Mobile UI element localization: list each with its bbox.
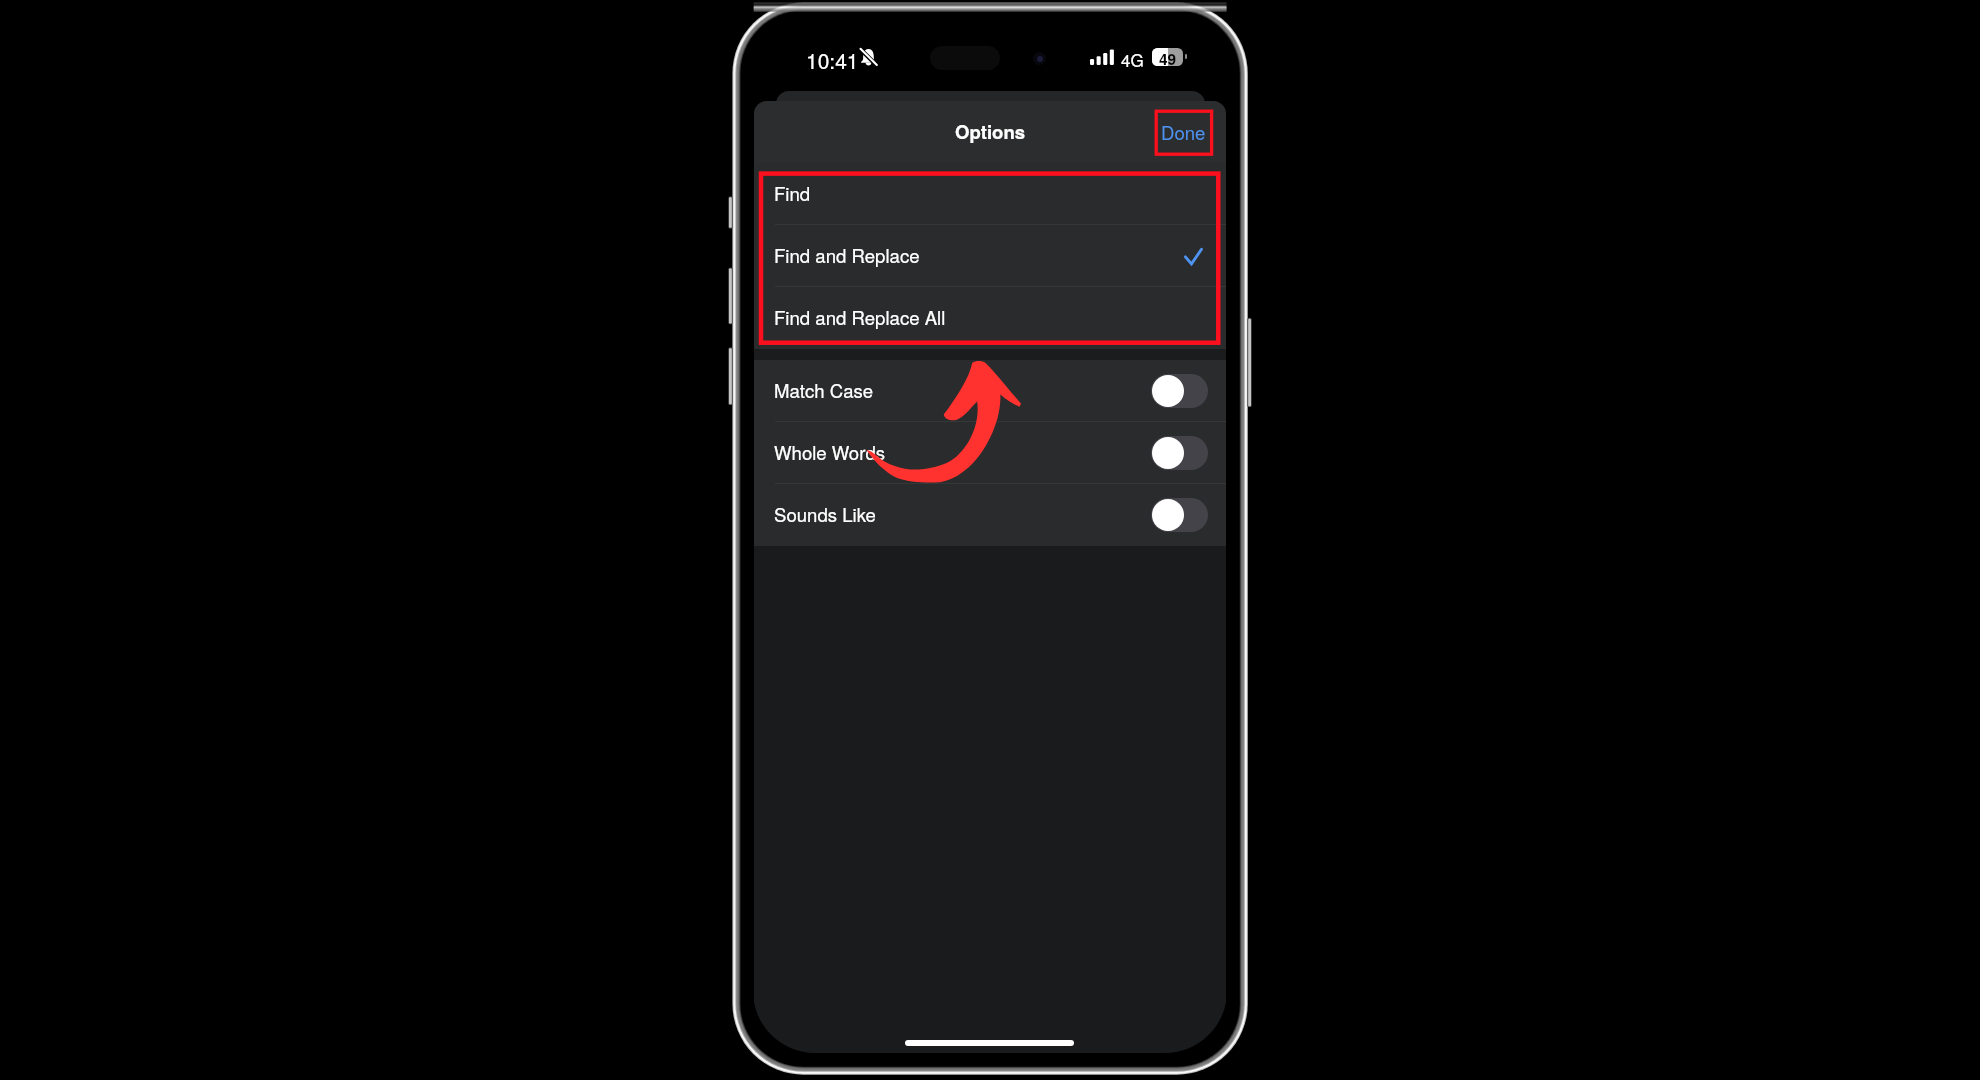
- button[interactable]: Sounds Like: [754, 484, 1226, 545]
- staticText: Done: [1161, 119, 1206, 146]
- button[interactable]: Whole Words: [1151, 436, 1208, 470]
- button[interactable]: Sounds Like: [1151, 498, 1208, 532]
- staticText: Find and Replace All: [774, 304, 946, 331]
- button[interactable]: Find and Replace: [754, 225, 1226, 286]
- staticText: 10:41: [806, 45, 859, 75]
- staticText: Find: [774, 180, 811, 207]
- staticText: Options: [955, 118, 1026, 145]
- staticText: 4G: [1121, 47, 1144, 71]
- staticText: Whole Words: [774, 439, 886, 466]
- button[interactable]: Done: [1161, 119, 1206, 146]
- staticText: Find and Replace: [774, 242, 920, 269]
- staticText: Sounds Like: [774, 501, 876, 528]
- button[interactable]: Match Case: [754, 360, 1226, 421]
- button[interactable]: Find and Replace All: [754, 287, 1226, 348]
- button[interactable]: Whole Words: [754, 422, 1226, 483]
- staticText: 49: [1159, 48, 1177, 66]
- button[interactable]: Match Case: [1151, 374, 1208, 408]
- button[interactable]: Find: [754, 163, 1226, 224]
- staticText: Match Case: [774, 377, 874, 404]
